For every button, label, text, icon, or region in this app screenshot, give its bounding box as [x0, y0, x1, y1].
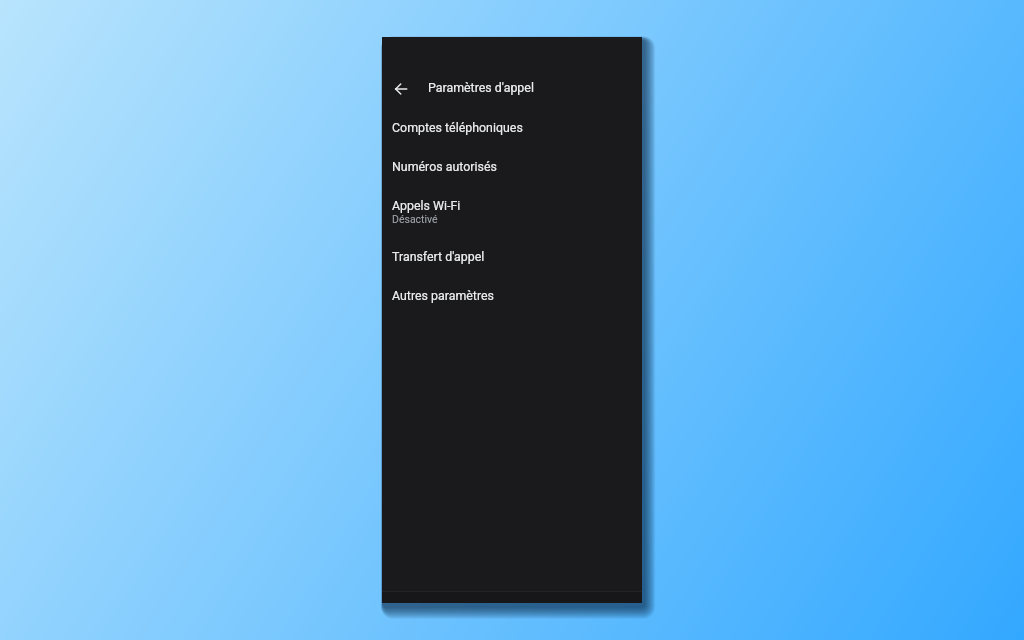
staticText: Paramètres d'appel: [428, 80, 534, 95]
button[interactable]: Back: [380, 68, 421, 109]
staticText: Numéros autorisés: [392, 159, 497, 174]
staticText: Comptes téléphoniques: [392, 120, 523, 135]
staticText: Désactivé: [392, 213, 438, 225]
button[interactable]: Comptes téléphoniques: [382, 108, 642, 147]
staticText: Autres paramètres: [392, 288, 494, 303]
button[interactable]: Transfert d'appel: [382, 237, 642, 276]
staticText: Appels Wi-Fi: [392, 198, 461, 213]
button[interactable]: Autres paramètres: [382, 276, 642, 315]
button[interactable]: Appels Wi-Fi: [382, 186, 642, 237]
button[interactable]: Numéros autorisés: [382, 147, 642, 186]
staticText: Transfert d'appel: [392, 249, 485, 264]
